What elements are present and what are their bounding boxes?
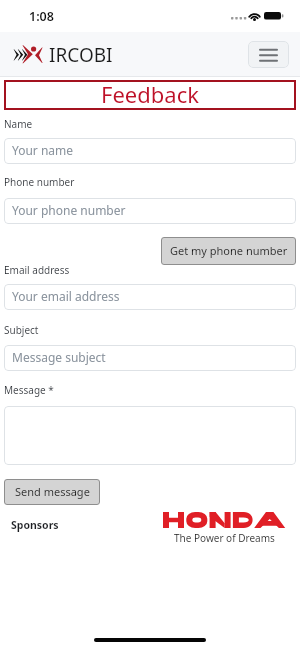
staticText: Get my phone number xyxy=(170,243,288,258)
staticText: Your email address xyxy=(12,288,120,304)
staticText: Sponsors xyxy=(11,518,59,532)
button[interactable] xyxy=(4,406,296,465)
staticText: 1:08 xyxy=(29,8,54,25)
staticText: Email address xyxy=(4,263,70,277)
staticText: Phone number xyxy=(4,175,75,189)
button[interactable]: Message subject xyxy=(4,345,296,371)
button[interactable]: Open navigation menu xyxy=(248,41,289,68)
staticText: Your name xyxy=(12,142,74,158)
staticText: Message subject xyxy=(12,349,106,365)
button[interactable]: Get my phone number xyxy=(161,237,296,265)
button[interactable]: Your name xyxy=(4,138,296,164)
staticText: Send message xyxy=(15,484,90,499)
button[interactable]: Send message xyxy=(4,479,100,505)
button[interactable]: Your phone number xyxy=(4,198,296,224)
staticText: IRCOBI xyxy=(49,42,113,68)
staticText: Feedback xyxy=(101,79,199,109)
button[interactable]: Your email address xyxy=(4,284,296,310)
staticText: Your phone number xyxy=(12,202,126,218)
staticText: Name xyxy=(4,117,33,131)
staticText: Message * xyxy=(4,383,54,397)
staticText: The Power of Dreams xyxy=(174,531,275,545)
staticText: Subject xyxy=(4,323,39,337)
